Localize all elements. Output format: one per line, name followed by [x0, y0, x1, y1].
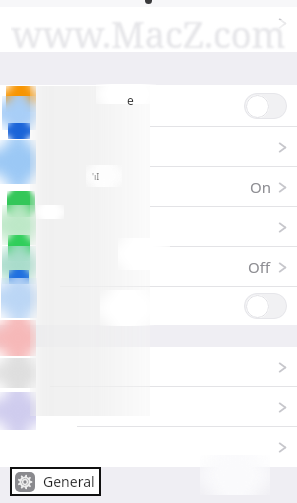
- button[interactable]: [0, 127, 297, 167]
- staticText: Off: [248, 257, 271, 277]
- button[interactable]: [0, 427, 297, 467]
- button[interactable]: Toggle: [244, 93, 287, 119]
- staticText: 'ıI: [92, 170, 100, 182]
- button[interactable]: General: [15, 467, 95, 496]
- button[interactable]: [0, 347, 297, 387]
- staticText: e: [127, 92, 134, 108]
- staticText: On: [250, 177, 271, 197]
- staticText: www.MacZ.com: [11, 10, 286, 54]
- button[interactable]: Toggle: [244, 293, 287, 319]
- button[interactable]: [0, 207, 297, 247]
- button[interactable]: Off: [0, 247, 297, 287]
- button[interactable]: On: [0, 167, 297, 207]
- button[interactable]: [0, 387, 297, 427]
- button[interactable]: Toggle: [0, 85, 297, 127]
- button[interactable]: [0, 7, 297, 52]
- button[interactable]: Toggle: [0, 287, 297, 325]
- staticText: General: [43, 472, 95, 491]
